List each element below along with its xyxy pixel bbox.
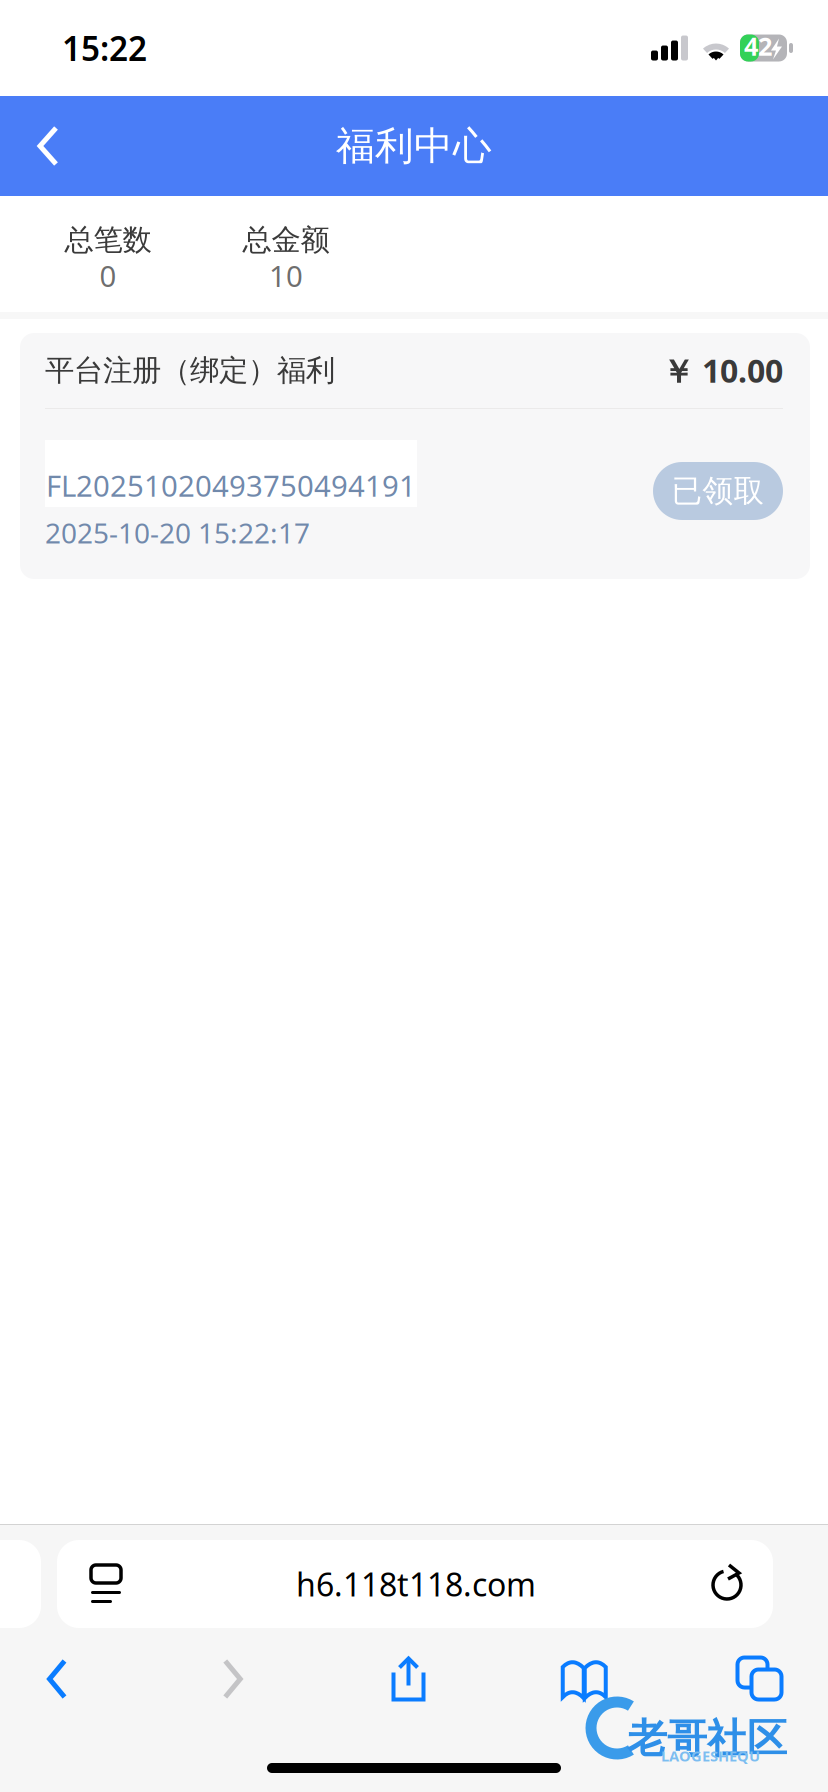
button[interactable]: 已领取 (653, 462, 783, 520)
staticText: 总金额 (242, 222, 329, 258)
staticText: 42 (744, 29, 772, 63)
button[interactable]: Reload (691, 1540, 773, 1628)
staticText: 福利中心 (336, 122, 492, 170)
staticText: 15:22 (62, 26, 147, 70)
button[interactable]: Share (351, 1641, 465, 1717)
staticText: 平台注册（绑定）福利 (45, 352, 335, 388)
button[interactable]: Back (0, 1641, 114, 1717)
staticText: 老哥社区 (627, 1714, 787, 1763)
button[interactable]: Back (0, 96, 86, 196)
staticText: 2025-10-20 15:22:17 (45, 514, 310, 551)
staticText: h6.118t118.com (296, 1563, 536, 1605)
button[interactable]: Bookmarks (527, 1641, 641, 1717)
staticText: LAOGESHEQU (661, 1746, 760, 1765)
staticText: 总笔数 (64, 222, 151, 258)
staticText: 10 (269, 256, 303, 295)
staticText: 0 (99, 256, 116, 295)
staticText: ￥ 10.00 (662, 349, 783, 392)
staticText: 已领取 (671, 472, 764, 510)
button[interactable]: Tabs (703, 1641, 817, 1717)
button[interactable]: Forward (176, 1641, 290, 1717)
staticText: FL20251020493750494191 (46, 466, 416, 505)
button[interactable]: Page settings (57, 1540, 141, 1628)
